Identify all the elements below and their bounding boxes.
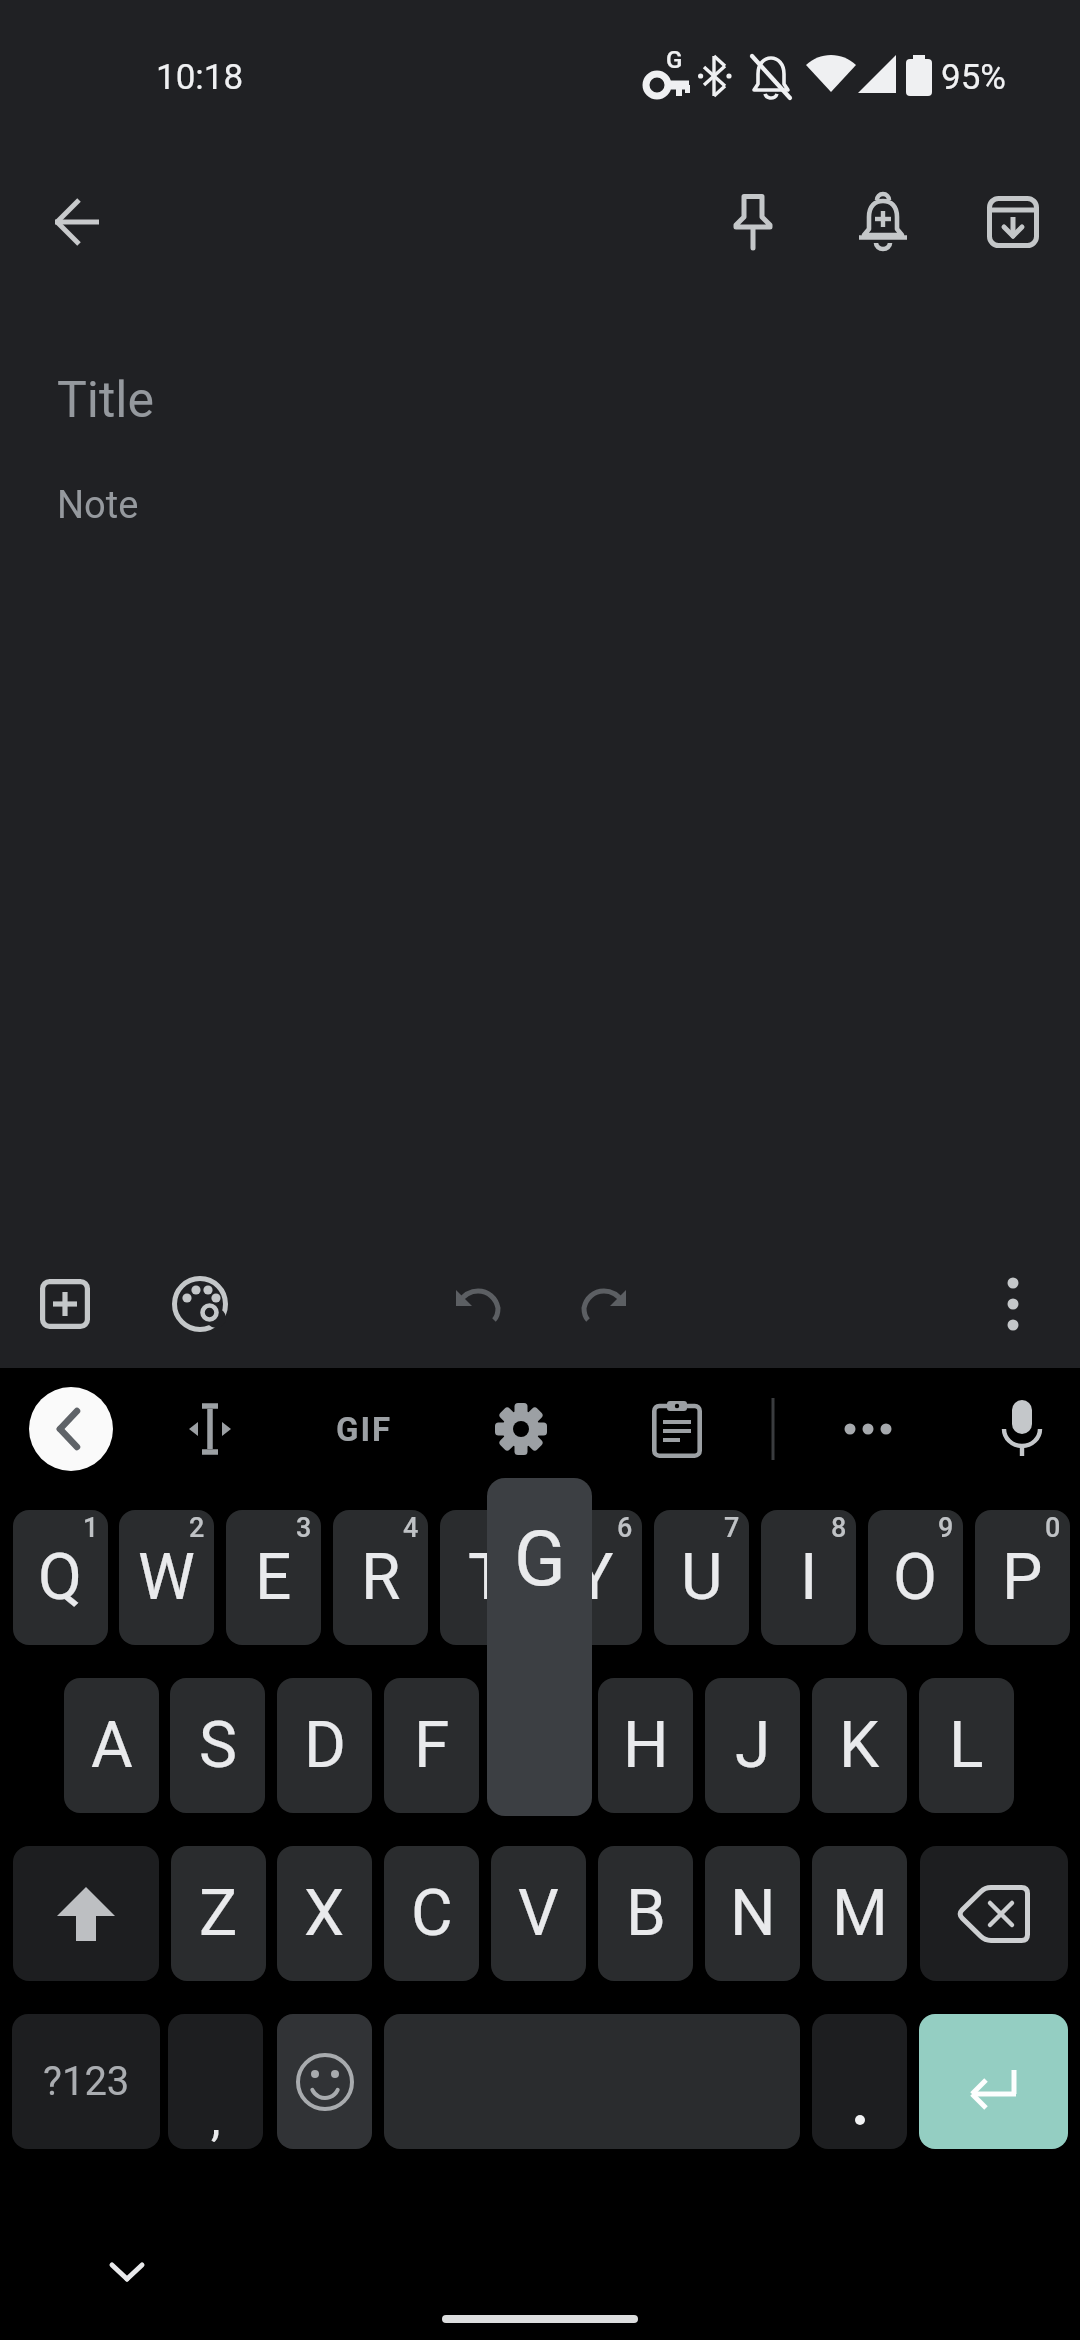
button[interactable] bbox=[812, 2014, 907, 2149]
staticText: E bbox=[255, 1540, 292, 1615]
button[interactable] bbox=[705, 174, 801, 270]
button[interactable] bbox=[277, 2014, 372, 2149]
button[interactable]: S bbox=[170, 1678, 265, 1813]
staticText: 0 bbox=[1045, 1512, 1061, 1544]
button[interactable]: , bbox=[168, 2014, 263, 2149]
staticText: W bbox=[138, 1540, 195, 1615]
staticText: M bbox=[832, 1876, 888, 1951]
button[interactable]: T bbox=[440, 1510, 535, 1645]
staticText: N bbox=[730, 1876, 776, 1951]
staticText: GIF bbox=[336, 1410, 393, 1449]
staticText: A bbox=[91, 1708, 133, 1783]
button[interactable] bbox=[29, 174, 125, 270]
button[interactable]: N bbox=[705, 1846, 800, 1981]
staticText: Z bbox=[199, 1876, 238, 1951]
button[interactable] bbox=[920, 1846, 1068, 1981]
staticText: T bbox=[468, 1540, 507, 1615]
staticText: H bbox=[623, 1708, 669, 1783]
button[interactable]: GIF bbox=[314, 1389, 414, 1469]
staticText: 7 bbox=[724, 1512, 740, 1544]
button[interactable]: R bbox=[333, 1510, 428, 1645]
button[interactable] bbox=[637, 1389, 717, 1469]
button[interactable]: W bbox=[119, 1510, 214, 1645]
staticText: O bbox=[893, 1540, 938, 1615]
staticText: Title bbox=[57, 371, 155, 430]
staticText: F bbox=[414, 1708, 450, 1783]
staticText: Q bbox=[38, 1540, 83, 1615]
button[interactable] bbox=[919, 2014, 1068, 2149]
button[interactable] bbox=[152, 1256, 248, 1352]
button[interactable] bbox=[835, 174, 931, 270]
staticText: B bbox=[626, 1876, 666, 1951]
staticText: U bbox=[681, 1540, 723, 1615]
staticText: K bbox=[839, 1708, 880, 1783]
button[interactable]: Q bbox=[13, 1510, 108, 1645]
button[interactable]: X bbox=[277, 1846, 372, 1981]
button[interactable]: Z bbox=[171, 1846, 266, 1981]
button[interactable]: I bbox=[761, 1510, 856, 1645]
button[interactable] bbox=[481, 1389, 561, 1469]
button[interactable]: C bbox=[384, 1846, 479, 1981]
staticText: I bbox=[800, 1540, 818, 1615]
button[interactable] bbox=[828, 1389, 908, 1469]
staticText: Y bbox=[575, 1540, 614, 1615]
staticText: G bbox=[514, 1514, 566, 1603]
button[interactable]: F bbox=[384, 1678, 479, 1813]
button[interactable]: U bbox=[654, 1510, 749, 1645]
staticText: 4 bbox=[403, 1512, 419, 1544]
button[interactable]: O bbox=[868, 1510, 963, 1645]
staticText: R bbox=[361, 1540, 401, 1615]
button[interactable]: D bbox=[277, 1678, 372, 1813]
staticText: , bbox=[211, 2090, 221, 2146]
button[interactable]: E bbox=[226, 1510, 321, 1645]
button[interactable] bbox=[87, 2232, 167, 2312]
button[interactable]: ?123 bbox=[12, 2014, 160, 2149]
staticText: V bbox=[518, 1876, 559, 1951]
button[interactable] bbox=[429, 1256, 525, 1352]
staticText: 1 bbox=[83, 1512, 99, 1544]
button[interactable] bbox=[29, 1387, 113, 1471]
button[interactable]: B bbox=[598, 1846, 693, 1981]
button[interactable]: M bbox=[812, 1846, 907, 1981]
staticText: Note bbox=[57, 483, 139, 528]
staticText: 5 bbox=[510, 1512, 526, 1544]
button[interactable]: L bbox=[919, 1678, 1014, 1813]
button[interactable] bbox=[170, 1389, 250, 1469]
staticText: J bbox=[735, 1708, 771, 1783]
staticText: G bbox=[666, 46, 683, 74]
staticText: D bbox=[304, 1708, 346, 1783]
button[interactable] bbox=[17, 1256, 113, 1352]
button[interactable] bbox=[557, 1256, 653, 1352]
staticText: 6 bbox=[617, 1512, 633, 1544]
button[interactable]: P bbox=[975, 1510, 1070, 1645]
staticText: 10:18 bbox=[156, 57, 244, 98]
button[interactable]: V bbox=[491, 1846, 586, 1981]
staticText: ?123 bbox=[43, 2058, 130, 2105]
button[interactable] bbox=[13, 1846, 159, 1981]
button[interactable] bbox=[982, 1389, 1062, 1469]
staticText: 95% bbox=[941, 57, 1006, 98]
button[interactable] bbox=[965, 174, 1061, 270]
staticText: P bbox=[1002, 1540, 1043, 1615]
staticText: 3 bbox=[296, 1512, 312, 1544]
staticText: C bbox=[411, 1876, 453, 1951]
button[interactable] bbox=[965, 1256, 1061, 1352]
button[interactable]: H bbox=[598, 1678, 693, 1813]
staticText: 2 bbox=[189, 1512, 205, 1544]
button[interactable]: J bbox=[705, 1678, 800, 1813]
staticText: 8 bbox=[831, 1512, 847, 1544]
staticText: 9 bbox=[938, 1512, 954, 1544]
button[interactable]: Y bbox=[547, 1510, 642, 1645]
staticText: S bbox=[199, 1708, 237, 1783]
button[interactable]: A bbox=[64, 1678, 159, 1813]
button[interactable]: K bbox=[812, 1678, 907, 1813]
staticText: L bbox=[949, 1708, 984, 1783]
staticText: X bbox=[304, 1876, 345, 1951]
